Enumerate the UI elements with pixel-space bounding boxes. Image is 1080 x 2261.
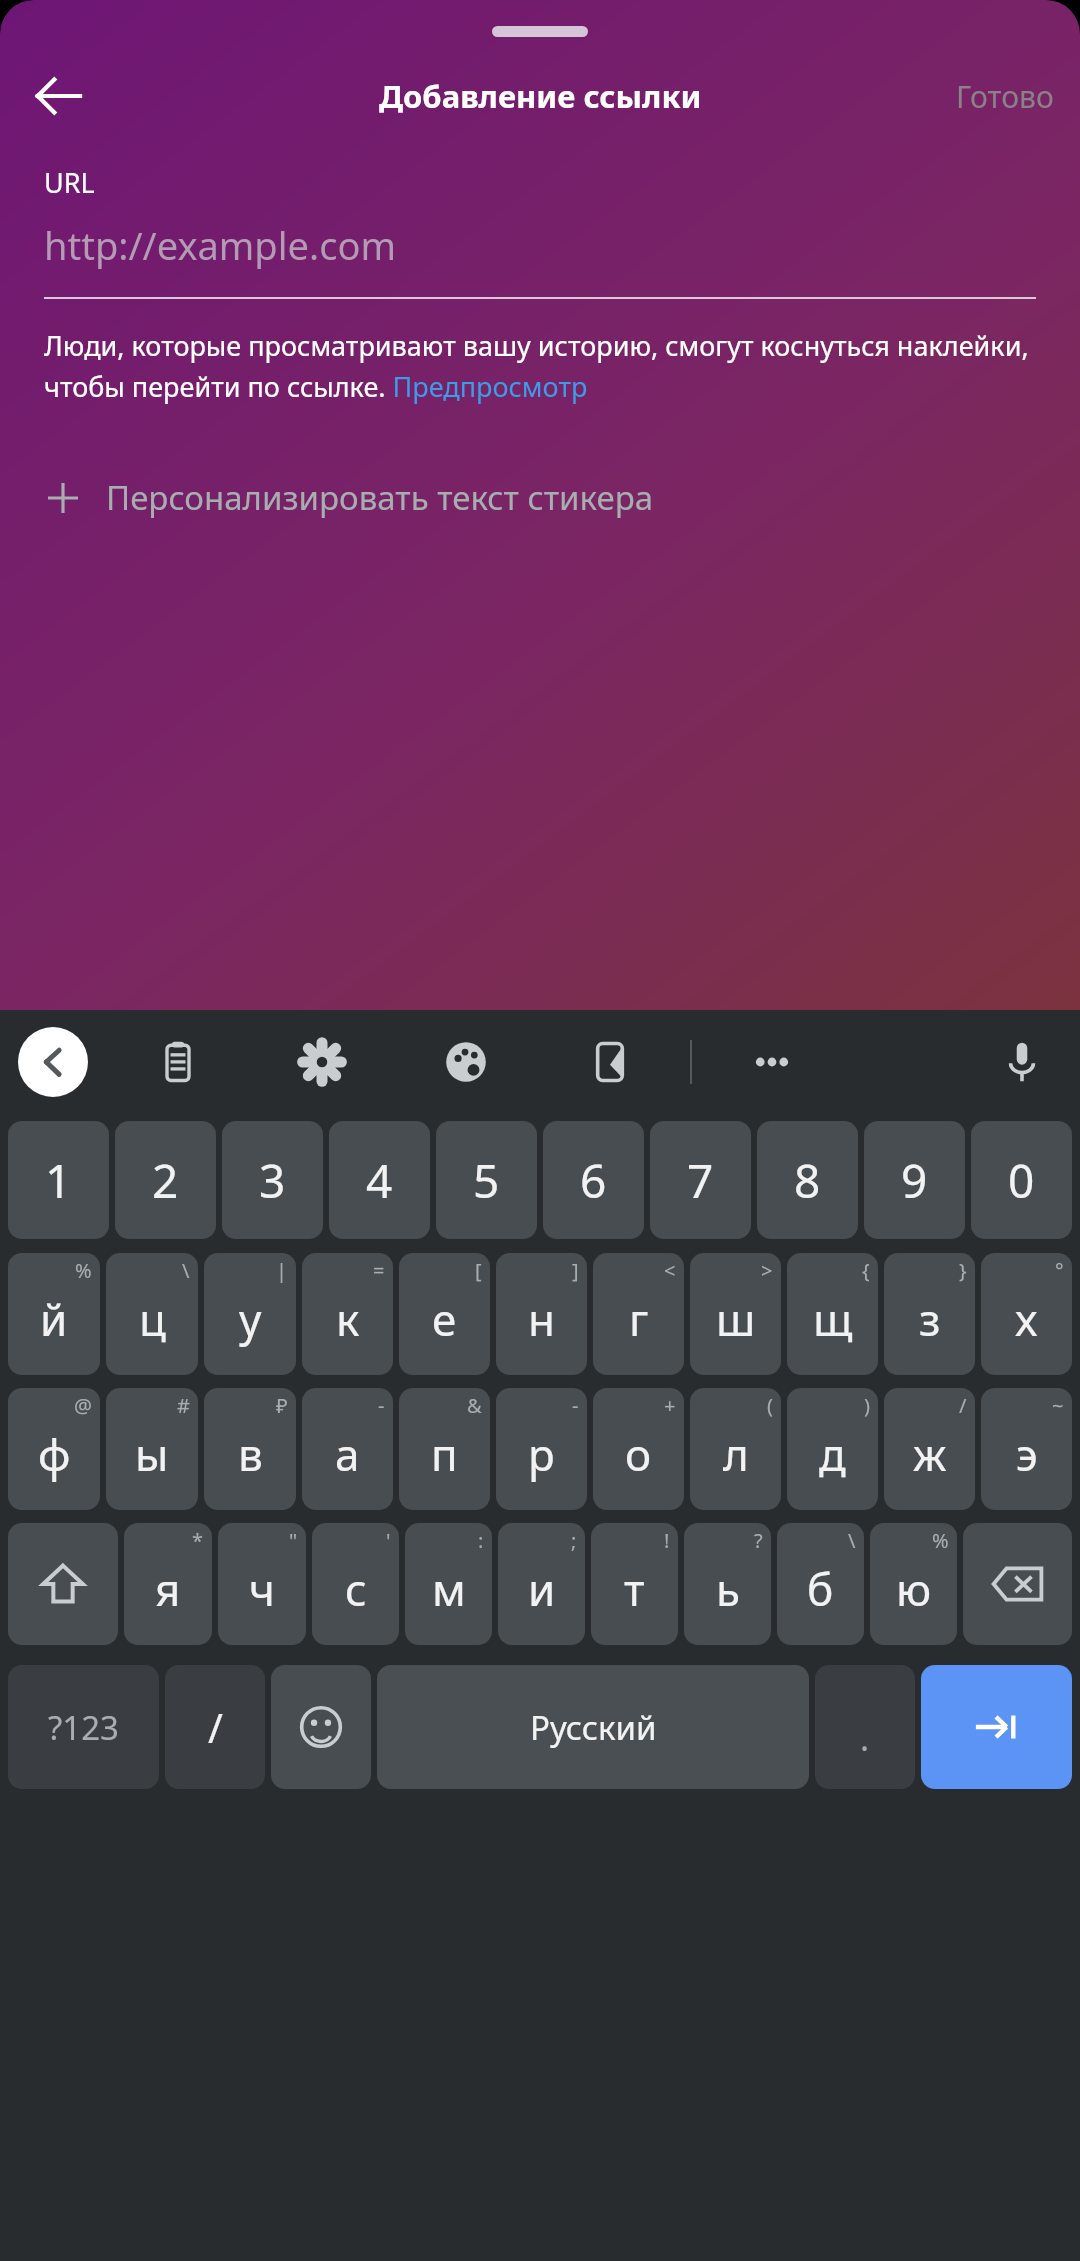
button[interactable]: .: [815, 1665, 915, 1789]
staticText: е: [432, 1289, 457, 1349]
staticText: ф: [38, 1424, 71, 1484]
staticText: я: [155, 1559, 181, 1619]
button[interactable]: Enter: [921, 1665, 1072, 1789]
button[interactable]: Backspace: [963, 1523, 1072, 1645]
staticText: н: [528, 1289, 556, 1349]
button[interactable]: Shift: [8, 1523, 118, 1645]
button[interactable]: +: [593, 1388, 684, 1510]
button[interactable]: More options: [736, 1026, 808, 1098]
staticText: -: [572, 1392, 579, 1419]
button[interactable]: ;: [498, 1523, 585, 1645]
button[interactable]: 8: [757, 1121, 858, 1239]
staticText: 4: [366, 1149, 393, 1212]
button[interactable]: #: [106, 1388, 198, 1510]
button[interactable]: °: [981, 1253, 1072, 1375]
button[interactable]: ): [787, 1388, 878, 1510]
staticText: а: [335, 1424, 360, 1484]
button[interactable]: ': [312, 1523, 399, 1645]
button[interactable]: =: [302, 1253, 393, 1375]
button[interactable]: Back: [22, 60, 94, 132]
button[interactable]: :: [405, 1523, 492, 1645]
button[interactable]: }: [884, 1253, 975, 1375]
button[interactable]: 4: [329, 1121, 430, 1239]
staticText: ?123: [48, 1705, 119, 1750]
staticText: т: [624, 1559, 645, 1619]
button[interactable]: ~: [981, 1388, 1072, 1510]
staticText: ": [289, 1527, 298, 1554]
button[interactable]: 2: [115, 1121, 216, 1239]
staticText: й: [40, 1289, 68, 1349]
button[interactable]: /: [884, 1388, 975, 1510]
button[interactable]: 5: [436, 1121, 537, 1239]
button[interactable]: Персонализировать текст стикера: [0, 463, 1080, 532]
button[interactable]: 1: [8, 1121, 109, 1239]
button[interactable]: /: [165, 1665, 265, 1789]
staticText: л: [723, 1424, 749, 1484]
button[interactable]: ?123: [8, 1665, 159, 1789]
staticText: #: [177, 1392, 190, 1419]
button[interactable]: >: [690, 1253, 781, 1375]
button[interactable]: http://example.com: [0, 219, 1080, 271]
staticText: +: [664, 1392, 676, 1419]
staticText: °: [1055, 1257, 1064, 1284]
button[interactable]: Close keyboard toolbar: [18, 1027, 88, 1097]
button[interactable]: ": [218, 1523, 306, 1645]
button[interactable]: Русский: [377, 1665, 809, 1789]
staticText: и: [528, 1559, 556, 1619]
staticText: ;: [571, 1527, 577, 1554]
button[interactable]: %: [8, 1253, 100, 1375]
button[interactable]: 7: [650, 1121, 751, 1239]
staticText: |: [276, 1257, 288, 1284]
staticText: в: [238, 1424, 263, 1484]
staticText: 9: [901, 1149, 928, 1212]
button[interactable]: {: [787, 1253, 878, 1375]
button[interactable]: \: [106, 1253, 198, 1375]
button[interactable]: Clipboard: [142, 1026, 214, 1098]
button[interactable]: 0: [971, 1121, 1072, 1239]
staticText: Готово: [956, 76, 1054, 117]
staticText: http://example.com: [44, 219, 396, 271]
button[interactable]: 6: [543, 1121, 644, 1239]
button[interactable]: 3: [222, 1121, 323, 1239]
staticText: ы: [135, 1424, 169, 1484]
staticText: /: [959, 1392, 967, 1419]
staticText: /: [208, 1700, 223, 1754]
staticText: {: [862, 1257, 870, 1284]
button[interactable]: |: [204, 1253, 296, 1375]
button[interactable]: Theme: [430, 1026, 502, 1098]
button[interactable]: ?: [684, 1523, 771, 1645]
button[interactable]: 9: [864, 1121, 965, 1239]
button[interactable]: One-handed mode: [574, 1026, 646, 1098]
button[interactable]: Voice input: [986, 1026, 1058, 1098]
staticText: у: [239, 1289, 262, 1349]
staticText: 5: [473, 1149, 500, 1212]
button[interactable]: %: [870, 1523, 957, 1645]
button[interactable]: ]: [496, 1253, 587, 1375]
staticText: Люди, которые просматривают вашу историю…: [44, 327, 1036, 405]
button[interactable]: [: [399, 1253, 490, 1375]
button[interactable]: ₽: [204, 1388, 296, 1510]
staticText: Персонализировать текст стикера: [106, 475, 654, 520]
button[interactable]: Settings: [286, 1026, 358, 1098]
button[interactable]: (: [690, 1388, 781, 1510]
staticText: *: [192, 1527, 204, 1554]
staticText: =: [373, 1257, 385, 1284]
staticText: ш: [716, 1289, 756, 1349]
button[interactable]: *: [124, 1523, 212, 1645]
button[interactable]: -: [302, 1388, 393, 1510]
staticText: 8: [794, 1149, 821, 1212]
button[interactable]: @: [8, 1388, 100, 1510]
staticText: ): [864, 1392, 870, 1419]
staticText: %: [75, 1257, 92, 1284]
button[interactable]: \: [777, 1523, 864, 1645]
button[interactable]: !: [591, 1523, 678, 1645]
button[interactable]: <: [593, 1253, 684, 1375]
button[interactable]: Emoji: [271, 1665, 371, 1789]
button[interactable]: Готово: [930, 64, 1080, 129]
staticText: щ: [813, 1289, 853, 1349]
button[interactable]: -: [496, 1388, 587, 1510]
staticText: !: [664, 1527, 670, 1554]
button[interactable]: &: [399, 1388, 490, 1510]
staticText: <: [664, 1257, 676, 1284]
staticText: м: [432, 1559, 466, 1619]
